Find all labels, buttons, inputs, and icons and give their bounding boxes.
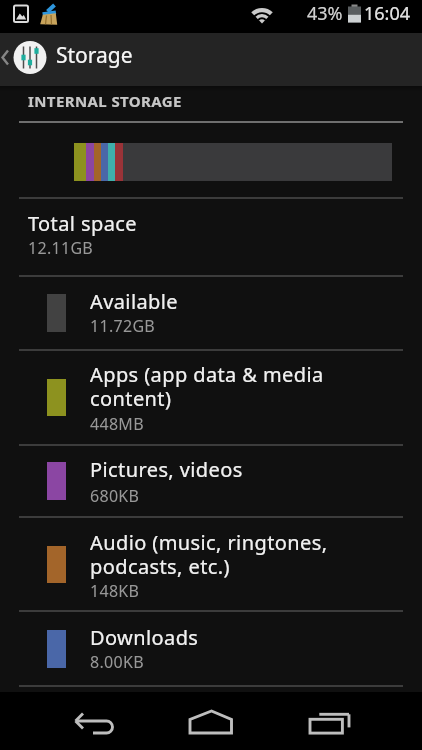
staticText: INTERNAL STORAGE xyxy=(28,91,182,111)
staticText: Audio (music, ringtones, xyxy=(90,529,328,556)
staticText: Available xyxy=(90,288,179,315)
staticText: 148KB xyxy=(90,580,140,602)
staticText: Apps (app data & media xyxy=(90,361,324,388)
staticText: 16:04 xyxy=(364,1,411,26)
staticText: Storage xyxy=(56,41,133,70)
button[interactable] xyxy=(0,276,422,349)
button[interactable] xyxy=(141,692,281,750)
staticText: Total space xyxy=(28,210,137,237)
button[interactable] xyxy=(281,692,422,750)
staticText: Pictures, videos xyxy=(90,456,243,483)
button[interactable]: Storage xyxy=(0,33,422,86)
button[interactable] xyxy=(0,611,422,685)
staticText: Downloads xyxy=(90,624,199,651)
staticText: podcasts, etc.) xyxy=(90,553,230,580)
button[interactable] xyxy=(0,350,422,444)
button[interactable] xyxy=(0,692,141,750)
staticText: 11.72GB xyxy=(90,315,156,337)
staticText: content) xyxy=(90,385,172,412)
button[interactable] xyxy=(0,445,422,516)
staticText: 680KB xyxy=(90,485,140,507)
staticText: 8.00KB xyxy=(90,651,144,673)
button[interactable] xyxy=(0,198,422,275)
staticText: 43% xyxy=(307,1,343,26)
staticText: 12.11GB xyxy=(28,237,94,259)
button[interactable] xyxy=(0,517,422,610)
staticText: 448MB xyxy=(90,413,144,435)
